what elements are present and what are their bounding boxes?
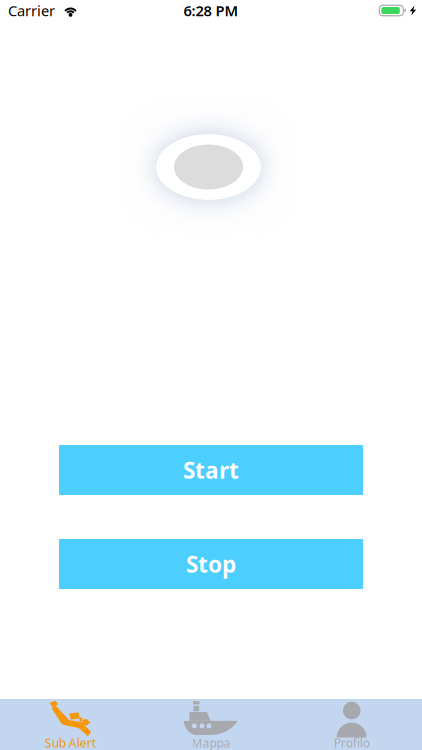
button[interactable]: Stop [59,539,363,589]
staticText: 6:28 PM [183,1,238,20]
button[interactable]: Profilo [281,699,422,750]
staticText: Sub Alert [45,735,96,750]
staticText: Stop [186,549,236,579]
staticText: Start [183,455,239,485]
staticText: Mappa [191,735,230,750]
staticText: Profilo [334,735,370,750]
staticText: Carrier [8,1,55,20]
button[interactable]: Start [59,445,363,495]
button[interactable]: Sub Alert [0,699,141,750]
button[interactable]: Mappa [141,699,281,750]
